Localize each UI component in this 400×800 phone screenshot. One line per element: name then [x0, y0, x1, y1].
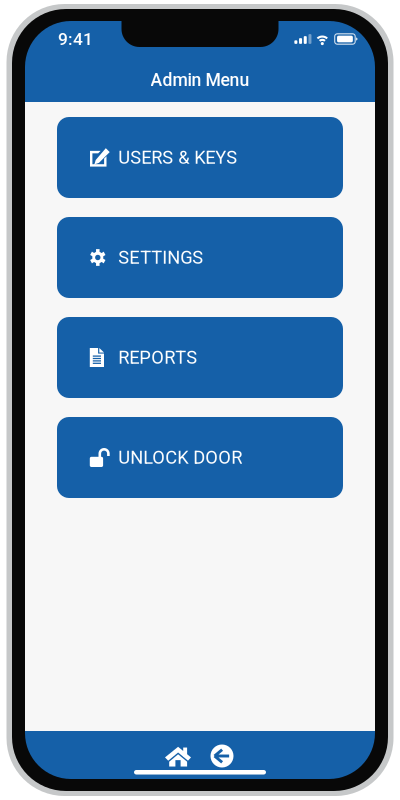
staticText: 9:41	[58, 29, 93, 49]
staticText: UNLOCK DOOR	[118, 447, 242, 468]
button[interactable]: UNLOCK DOOR	[57, 417, 343, 498]
button[interactable]: Back	[202, 744, 242, 768]
button[interactable]: USERS & KEYS	[57, 117, 343, 198]
staticText: USERS & KEYS	[118, 147, 237, 168]
button[interactable]: REPORTS	[57, 317, 343, 398]
staticText: REPORTS	[118, 347, 197, 368]
staticText: Admin Menu	[150, 70, 249, 90]
staticText: SETTINGS	[118, 247, 203, 268]
button[interactable]: SETTINGS	[57, 217, 343, 298]
button[interactable]: Home	[158, 744, 198, 768]
